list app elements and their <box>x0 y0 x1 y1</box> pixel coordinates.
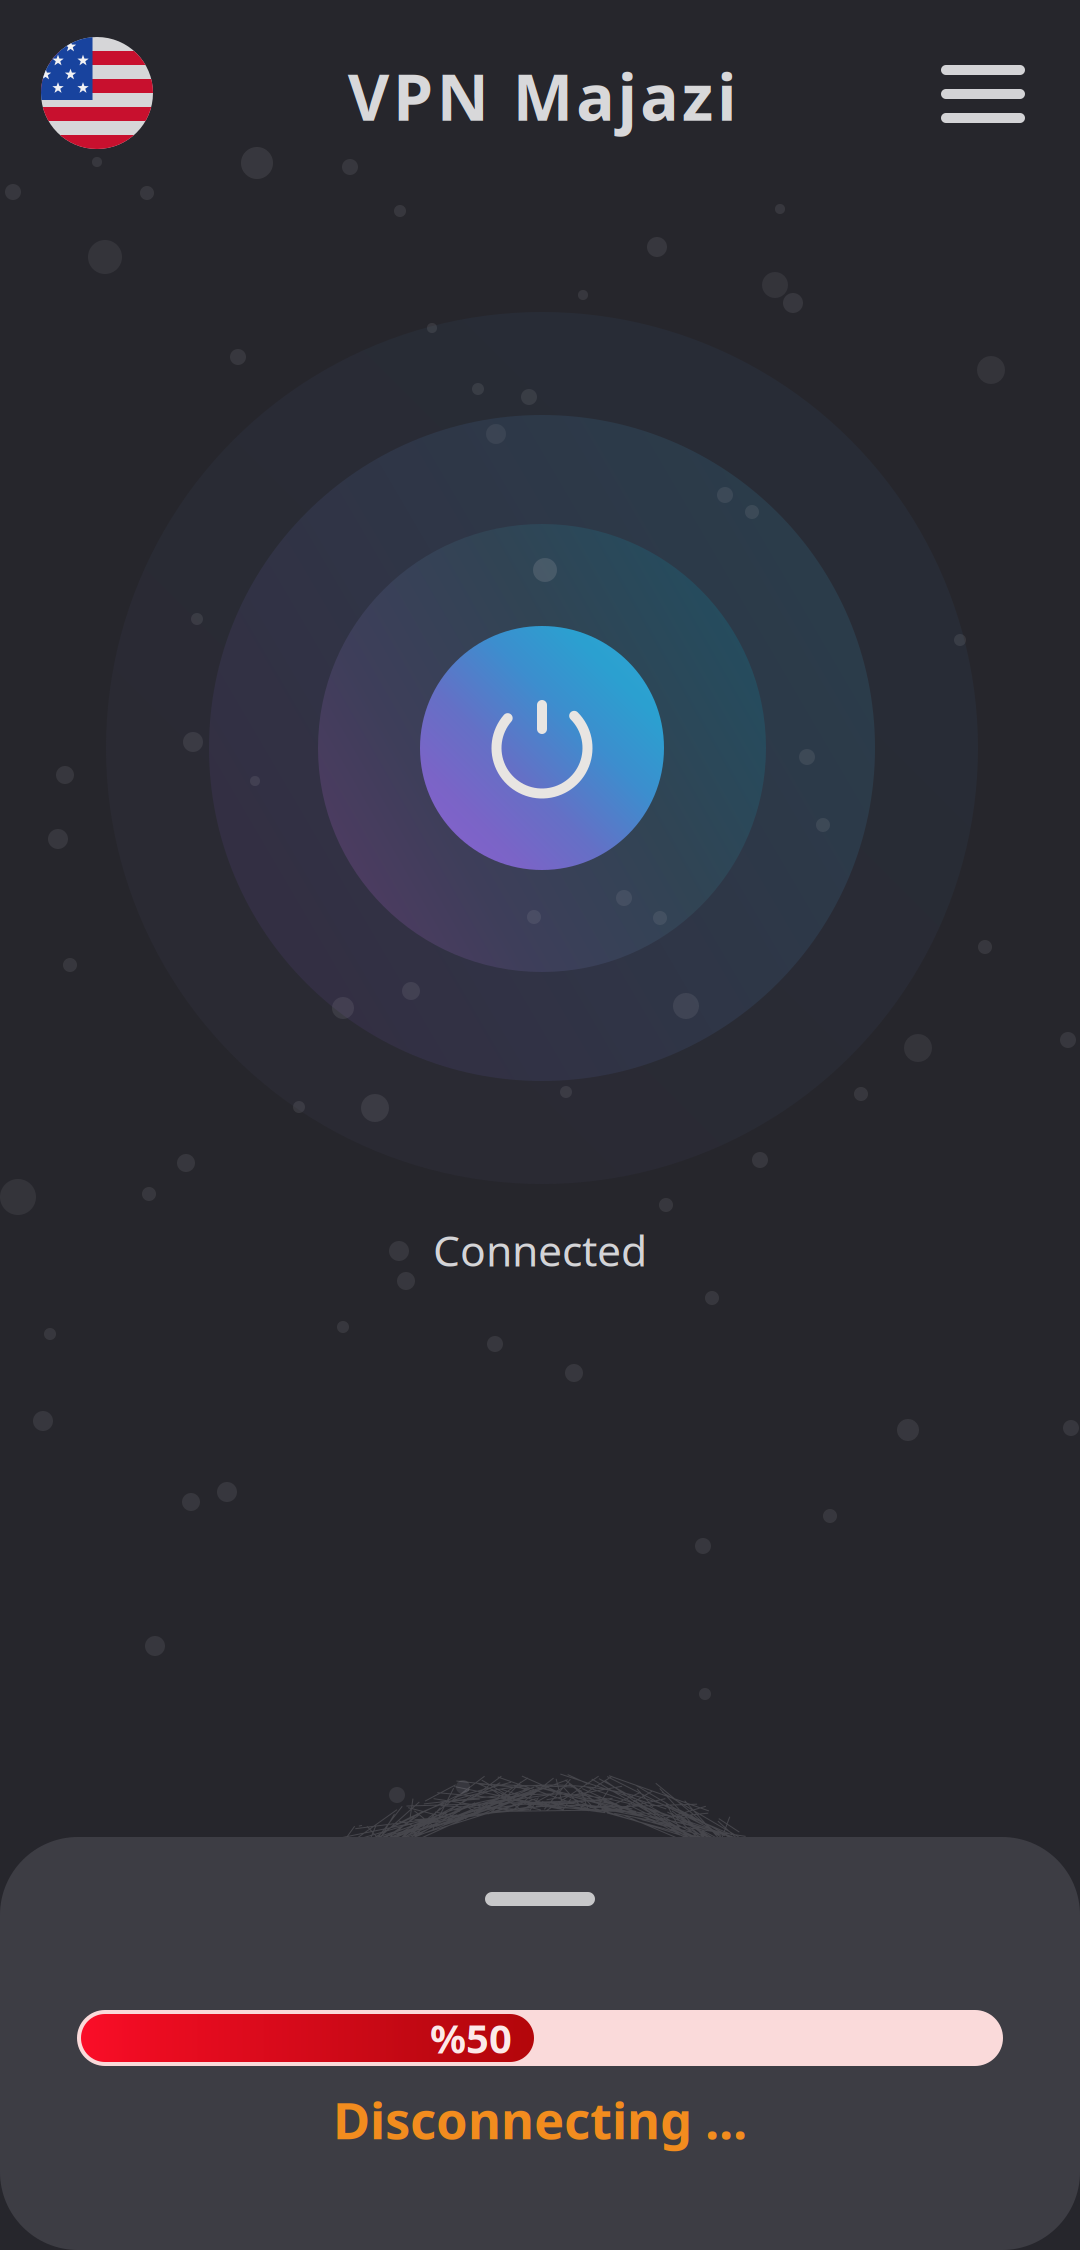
staticText: %50 <box>430 2011 512 2064</box>
staticText: Connected <box>433 1222 647 1278</box>
button[interactable]: Change server country <box>0 0 163 159</box>
button[interactable]: Menu <box>921 0 1080 146</box>
staticText: Disconnecting ... <box>333 2086 747 2153</box>
staticText: VPN Majazi <box>348 53 736 138</box>
button[interactable]: Disconnect VPN <box>420 626 664 870</box>
